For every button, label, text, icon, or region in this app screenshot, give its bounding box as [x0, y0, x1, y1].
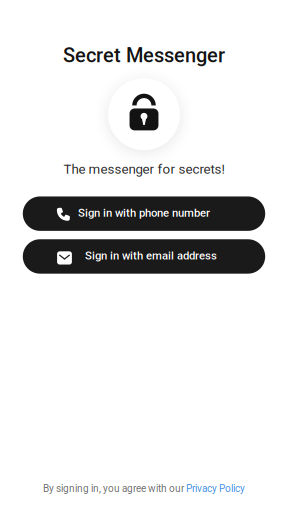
button[interactable]: Privacy Policy — [186, 483, 245, 494]
button[interactable]: Sign in with phone number — [23, 196, 265, 231]
staticText: By signing in, you agree with our — [43, 483, 186, 494]
button[interactable]: Sign in with email address — [23, 239, 265, 274]
staticText: Sign in with phone number — [78, 206, 210, 219]
staticText: Secret Messenger — [63, 44, 225, 67]
staticText: The messenger for secrets! — [63, 161, 224, 177]
staticText: Sign in with email address — [85, 249, 217, 262]
staticText: Privacy Policy — [186, 483, 245, 494]
